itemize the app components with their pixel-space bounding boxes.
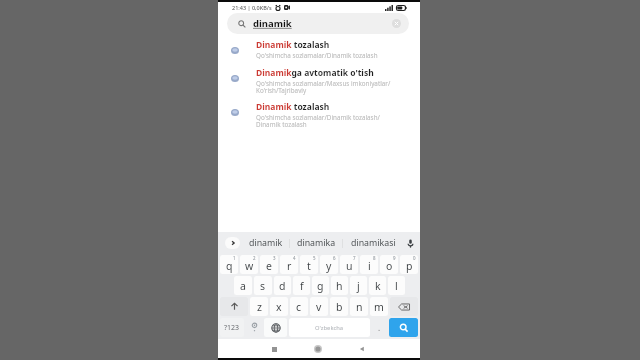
staticText: d [279,279,286,293]
button[interactable]: n [350,297,368,316]
button[interactable]: 0 [400,255,418,274]
staticText: a [240,279,246,293]
staticText: k [375,279,381,293]
button[interactable]: 3 [260,255,278,274]
button[interactable]: Voice input [403,235,417,251]
staticText: Dinamikga avtomatik o'tish [256,67,374,79]
button[interactable]: j [350,276,367,295]
button[interactable]: dinamika [290,232,342,254]
staticText: n [356,300,363,314]
staticText: dinamika [297,237,336,249]
button[interactable]: 6 [320,255,338,274]
staticText: s [260,279,266,293]
staticText: r [287,259,292,273]
button[interactable]: m [370,297,388,316]
staticText: l [395,279,398,293]
staticText: 9 [393,255,396,261]
staticText: Dinamik tozalash [256,39,330,51]
staticText: z [257,300,262,314]
button[interactable]: x [270,297,288,316]
staticText: h [336,279,343,293]
button[interactable]: k [369,276,386,295]
staticText: 8 [373,255,376,261]
button[interactable]: s [254,276,272,295]
button[interactable]: Dinamikga avtomatik o'tish [227,67,414,95]
staticText: dinamikasi [351,237,396,249]
staticText: c [296,300,302,314]
button[interactable]: Dinamik tozalash [227,39,414,60]
button[interactable]: b [330,297,348,316]
staticText: m [374,300,384,314]
button[interactable]: 1 [220,255,238,274]
button[interactable]: dinamikasi [343,232,403,254]
button[interactable]: 9 [380,255,398,274]
button[interactable]: Search [389,318,418,337]
staticText: 3 [273,255,276,261]
button[interactable]: 4 [280,255,298,274]
button[interactable]: d [274,276,291,295]
staticText: b [336,300,343,314]
button[interactable]: Clear search [392,19,401,28]
staticText: 0 [413,255,416,261]
button[interactable]: c [290,297,308,316]
button[interactable]: O'zbekcha [289,318,370,337]
staticText: i [368,259,371,273]
button[interactable]: Backspace [390,297,418,316]
button[interactable]: Dinamik tozalash [227,101,414,129]
button[interactable]: dinamik [242,232,289,254]
button[interactable]: a [234,276,252,295]
staticText: g [317,279,324,293]
button[interactable]: z [250,297,268,316]
staticText: Qo'shimcha sozlamalar/Maxsus imkoniyatla… [256,79,391,95]
staticText: Qo'shimcha sozlamalar/Dinamik tozalash [256,51,378,60]
button[interactable]: 2 [240,255,258,274]
button[interactable]: Emoji [246,318,262,337]
button[interactable]: h [331,276,348,295]
button[interactable]: 8 [360,255,378,274]
staticText: Dinamik tozalash [256,101,330,113]
staticText: . [378,322,381,333]
staticText: 7 [353,255,356,261]
staticText: j [357,279,360,293]
staticText: ?123 [224,323,240,333]
staticText: o [386,259,393,273]
button[interactable]: v [310,297,328,316]
staticText: u [346,259,353,273]
button[interactable]: ?123 [220,318,244,337]
button[interactable]: More suggestions [225,237,240,249]
staticText: 6 [333,255,336,261]
staticText: x [276,300,282,314]
staticText: Qo'shimcha sozlamalar/Dinamik tozalash/ … [256,113,380,129]
button[interactable]: . [372,318,387,337]
staticText: q [226,259,233,273]
staticText: f [300,279,304,293]
button[interactable]: f [293,276,310,295]
button[interactable]: 7 [340,255,358,274]
button[interactable]: Home [310,341,326,357]
button[interactable]: Change language [264,318,287,337]
staticText: t [307,259,311,273]
staticText: p [406,259,413,273]
staticText: dinamik [249,237,283,249]
staticText: v [316,300,322,314]
staticText: w [245,259,254,273]
staticText: e [266,259,272,273]
button[interactable]: dinamik [227,13,409,34]
staticText: O'zbekcha [315,324,344,332]
button[interactable]: g [312,276,329,295]
button[interactable]: l [388,276,405,295]
button[interactable]: Recents [266,341,282,357]
staticText: dinamik [253,17,292,30]
staticText: 21:43 | 0,0KB/s [232,4,272,11]
staticText: 2 [253,255,256,261]
staticText: 4 [293,255,296,261]
button[interactable]: Shift [220,297,248,316]
button[interactable]: Back [354,341,370,357]
button[interactable]: 5 [300,255,318,274]
staticText: y [326,259,332,273]
staticText: 5 [313,255,316,261]
staticText: 1 [233,255,236,261]
